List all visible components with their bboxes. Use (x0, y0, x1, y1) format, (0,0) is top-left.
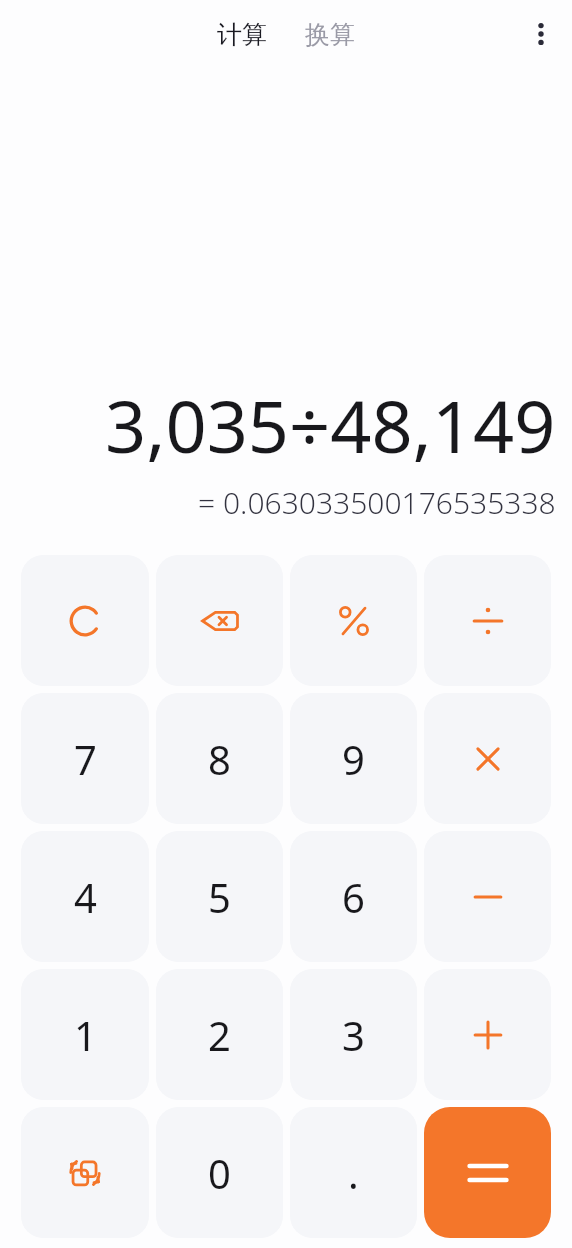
staticText: 3 (342, 1008, 365, 1062)
staticText: 0 (208, 1146, 231, 1200)
button[interactable]: Multiply (424, 693, 551, 824)
staticText: 换算 (305, 19, 355, 50)
button[interactable]: More options (519, 12, 563, 56)
button[interactable]: 3 (290, 969, 417, 1100)
button[interactable]: 7 (21, 693, 149, 824)
staticText: . (348, 1146, 359, 1200)
staticText: 2 (208, 1008, 231, 1062)
staticText: 4 (74, 870, 97, 924)
staticText: 3,035÷48,149 (105, 376, 556, 474)
staticText: 6 (342, 870, 365, 924)
button[interactable]: 计算 (212, 15, 272, 54)
staticText: 8 (208, 732, 231, 786)
button[interactable]: 2 (156, 969, 283, 1100)
button[interactable]: 换算 (300, 15, 360, 54)
button[interactable]: Convert (21, 1107, 149, 1238)
button[interactable]: 1 (21, 969, 149, 1100)
button[interactable]: 9 (290, 693, 417, 824)
button[interactable]: Clear (21, 555, 149, 686)
staticText: 1 (74, 1008, 97, 1062)
button[interactable]: 5 (156, 831, 283, 962)
button[interactable]: 4 (21, 831, 149, 962)
staticText: 9 (342, 732, 365, 786)
staticText: = 0.063033500176535338 (198, 482, 556, 523)
button[interactable]: Backspace (156, 555, 283, 686)
staticText: 5 (208, 870, 231, 924)
button[interactable]: . (290, 1107, 417, 1238)
button[interactable]: 6 (290, 831, 417, 962)
staticText: 7 (74, 732, 97, 786)
staticText: 计算 (217, 19, 267, 50)
button[interactable]: 0 (156, 1107, 283, 1238)
button[interactable]: Minus (424, 831, 551, 962)
button[interactable]: 8 (156, 693, 283, 824)
button[interactable]: Percent (290, 555, 417, 686)
button[interactable]: Divide (424, 555, 551, 686)
button[interactable]: Equals (424, 1107, 551, 1238)
button[interactable]: Plus (424, 969, 551, 1100)
